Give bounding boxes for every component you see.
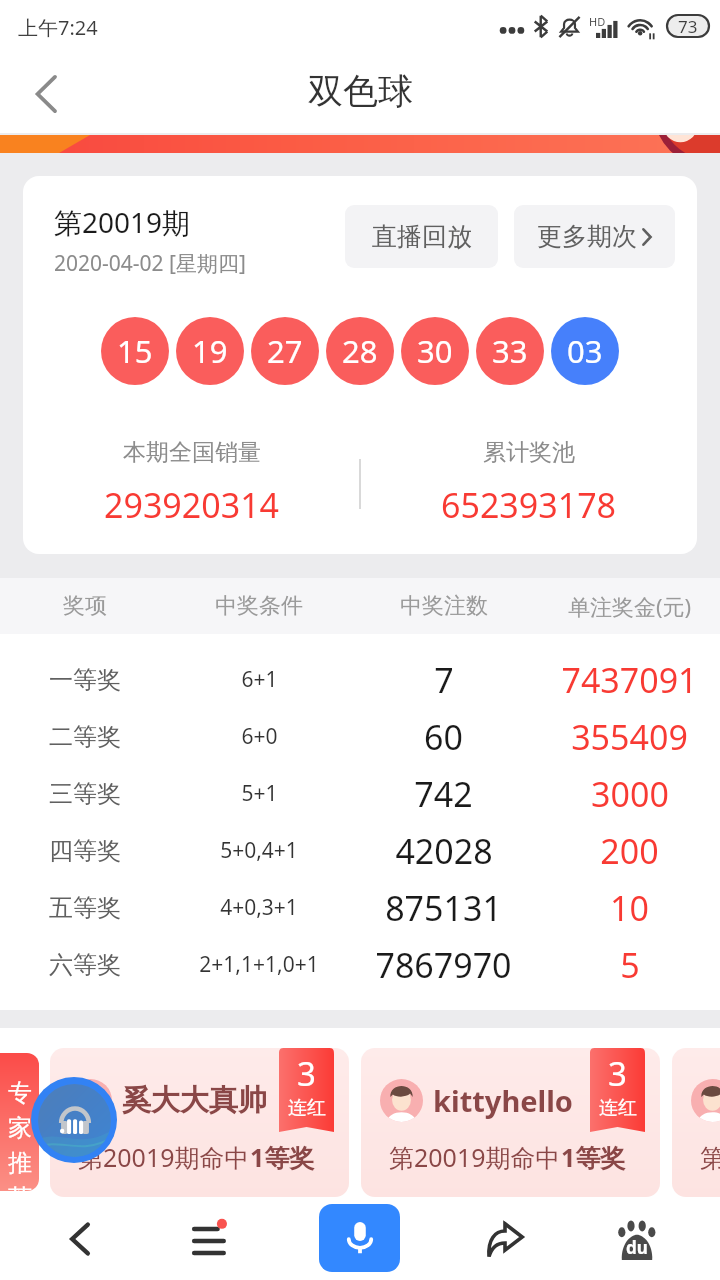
staticText: 15 xyxy=(117,330,153,372)
staticText: 7 xyxy=(434,657,454,703)
button[interactable]: Voice search xyxy=(319,1204,400,1272)
button[interactable]: 第三方 xyxy=(672,1048,720,1197)
button[interactable]: Audio player xyxy=(31,1077,117,1163)
staticText: 5 xyxy=(620,942,640,988)
staticText: 1等奖 xyxy=(250,1140,315,1174)
staticText: 三等奖 xyxy=(49,779,121,809)
staticText: 3000 xyxy=(591,771,669,817)
staticText: 30 xyxy=(417,330,453,372)
button[interactable]: Back xyxy=(36,1197,124,1280)
staticText: 第20019期命中 xyxy=(78,1140,250,1174)
staticText: 355409 xyxy=(571,714,688,760)
staticText: 双色球 xyxy=(308,69,413,113)
staticText: 33 xyxy=(492,330,528,372)
button[interactable]: kittyhello xyxy=(361,1048,660,1197)
staticText: 直播回放 xyxy=(372,221,472,252)
staticText: 5+1 xyxy=(241,779,278,808)
staticText: 第20019期命中 xyxy=(389,1140,561,1174)
staticText: 10 xyxy=(610,885,649,931)
button[interactable]: Menu xyxy=(170,1197,258,1280)
button[interactable]: 一等奖 xyxy=(0,651,720,708)
staticText: 中奖条件 xyxy=(215,592,303,620)
staticText: 第20019期 xyxy=(54,203,191,241)
staticText: 60 xyxy=(424,714,463,760)
staticText: 奖项 xyxy=(63,592,107,620)
staticText: 一等奖 xyxy=(49,665,121,695)
button[interactable]: 四等奖 xyxy=(0,822,720,879)
staticText: 1等奖 xyxy=(561,1140,626,1174)
staticText: 上午7:24 xyxy=(18,14,98,41)
staticText: 7867970 xyxy=(375,942,512,988)
staticText: kittyhello xyxy=(433,1081,573,1120)
staticText: 03 xyxy=(567,330,603,372)
button[interactable]: 三等奖 xyxy=(0,765,720,822)
staticText: 6+1 xyxy=(241,665,278,694)
staticText: HD xyxy=(589,14,606,29)
button[interactable]: 直播回放 xyxy=(345,205,498,268)
staticText: 4+0,3+1 xyxy=(220,893,298,922)
staticText: 连红 xyxy=(288,1096,326,1120)
staticText: 3 xyxy=(608,1051,627,1096)
staticText: du xyxy=(626,1236,648,1259)
staticText: 本期全国销量 xyxy=(123,438,261,467)
staticText: 四等奖 xyxy=(49,836,121,866)
staticText: 家 xyxy=(8,1113,32,1143)
staticText: 中奖注数 xyxy=(400,592,488,620)
staticText: 7437091 xyxy=(561,657,698,703)
button[interactable]: 二等奖 xyxy=(0,708,720,765)
staticText: 652393178 xyxy=(441,482,617,528)
button[interactable]: 更多期次 xyxy=(514,205,675,268)
button[interactable]: Baidu xyxy=(593,1197,681,1280)
staticText: 更多期次 xyxy=(537,221,637,252)
staticText: 3 xyxy=(297,1051,316,1096)
staticText: 五等奖 xyxy=(49,893,121,923)
staticText: 742 xyxy=(414,771,473,817)
staticText: 27 xyxy=(267,330,303,372)
staticText: 6+0 xyxy=(241,722,278,751)
staticText: 专 xyxy=(8,1078,32,1108)
staticText: 单注奖金(元) xyxy=(568,591,692,621)
staticText: 28 xyxy=(342,330,378,372)
staticText: 2+1,1+1,0+1 xyxy=(199,950,319,979)
staticText: 连红 xyxy=(599,1096,637,1120)
button[interactable]: Back xyxy=(0,55,92,133)
button[interactable]: 专 xyxy=(0,1053,39,1191)
staticText: 42028 xyxy=(395,828,493,874)
staticText: 推 xyxy=(8,1148,32,1178)
staticText: 5+0,4+1 xyxy=(220,836,298,865)
staticText: 73 xyxy=(678,15,698,38)
staticText: 875131 xyxy=(385,885,502,931)
button[interactable]: 奚大大真帅 xyxy=(50,1048,349,1197)
staticText: 2020-04-02 [星期四] xyxy=(54,249,246,278)
staticText: 二等奖 xyxy=(49,722,121,752)
staticText: 荐 xyxy=(8,1183,32,1191)
staticText: 累计奖池 xyxy=(483,438,575,467)
staticText: 六等奖 xyxy=(49,950,121,980)
button[interactable]: Share xyxy=(461,1197,549,1280)
button[interactable]: 六等奖 xyxy=(0,936,720,993)
staticText: 奚大大真帅 xyxy=(122,1082,267,1119)
staticText: 293920314 xyxy=(104,482,280,528)
button[interactable]: 五等奖 xyxy=(0,879,720,936)
staticText: 第20019期命中 xyxy=(700,1140,720,1174)
staticText: 19 xyxy=(192,330,228,372)
staticText: 200 xyxy=(600,828,659,874)
